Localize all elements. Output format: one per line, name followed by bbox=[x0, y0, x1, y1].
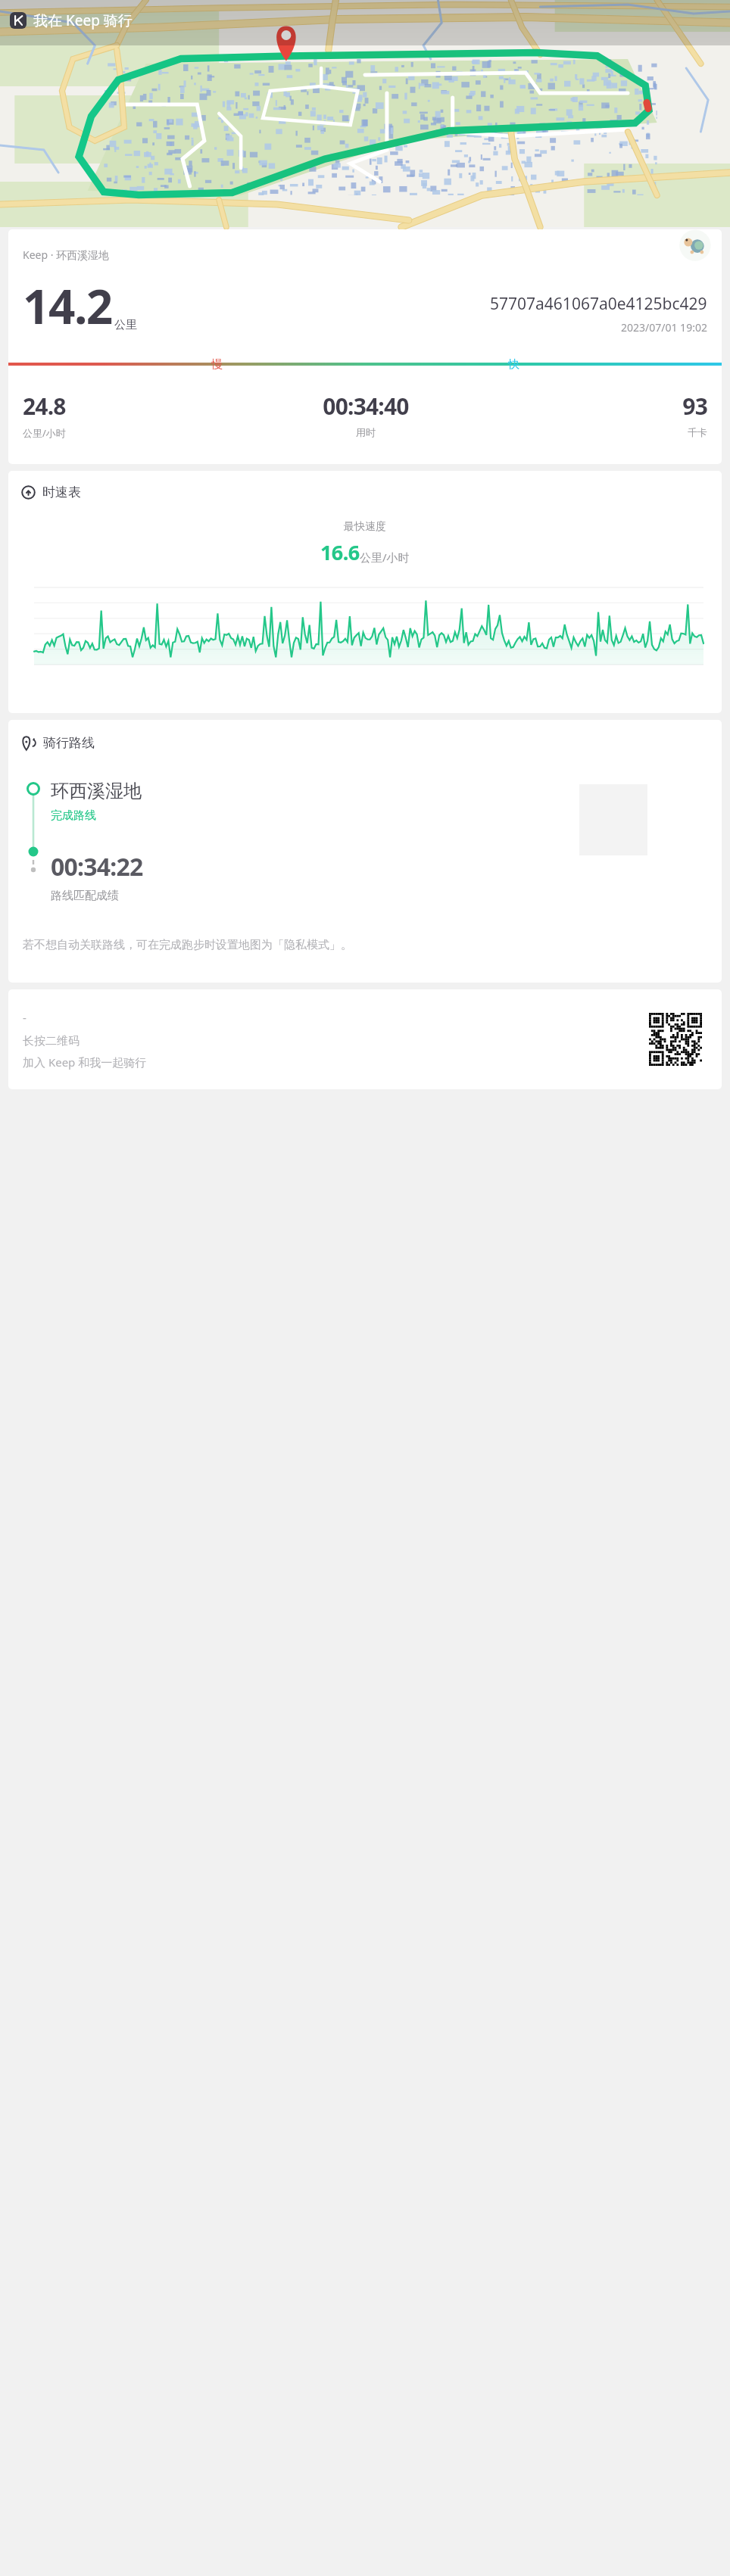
staticText: 公里 bbox=[114, 318, 137, 332]
staticText: 57707a461067a0e4125bc429 bbox=[490, 293, 707, 315]
staticText: 骑行路线 bbox=[43, 735, 95, 751]
staticText: 时速表 bbox=[42, 484, 81, 500]
staticText: 快 bbox=[508, 357, 519, 372]
button[interactable]: Keep bbox=[10, 12, 27, 29]
staticText: 环西溪湿地 bbox=[51, 780, 142, 802]
staticText: 千卡 bbox=[688, 426, 707, 438]
staticText: 93 bbox=[682, 391, 707, 422]
staticText: 慢 bbox=[211, 357, 223, 372]
button[interactable]: 骑行路线 bbox=[21, 735, 95, 751]
staticText: 最快速度 bbox=[344, 520, 386, 534]
staticText: 完成路线 bbox=[51, 808, 96, 823]
staticText: 用时 bbox=[356, 426, 376, 438]
staticText: 00:34:22 bbox=[51, 850, 143, 883]
staticText: - bbox=[23, 1010, 27, 1025]
staticText: Keep · 环西溪湿地 bbox=[23, 248, 110, 262]
staticText: 2023/07/01 19:02 bbox=[621, 320, 707, 335]
staticText: 14.2 bbox=[23, 274, 112, 338]
staticText: 00:34:40 bbox=[323, 391, 409, 422]
staticText: 16.6 bbox=[320, 538, 360, 566]
button[interactable]: QR code bbox=[649, 1013, 702, 1066]
staticText: 加入 Keep 和我一起骑行 bbox=[23, 1054, 147, 1070]
staticText: 我在 Keep 骑行 bbox=[33, 11, 133, 30]
button[interactable]: 时速表 bbox=[21, 484, 81, 500]
staticText: 公里/小时 bbox=[23, 426, 66, 440]
staticText: 路线匹配成绩 bbox=[51, 889, 119, 903]
staticText: 公里/小时 bbox=[360, 550, 410, 565]
button[interactable]: Badge bbox=[678, 229, 711, 263]
staticText: 24.8 bbox=[23, 391, 66, 422]
staticText: 若不想自动关联路线，可在完成跑步时设置地图为「隐私模式」。 bbox=[23, 938, 352, 952]
staticText: 长按二维码 bbox=[23, 1034, 80, 1048]
